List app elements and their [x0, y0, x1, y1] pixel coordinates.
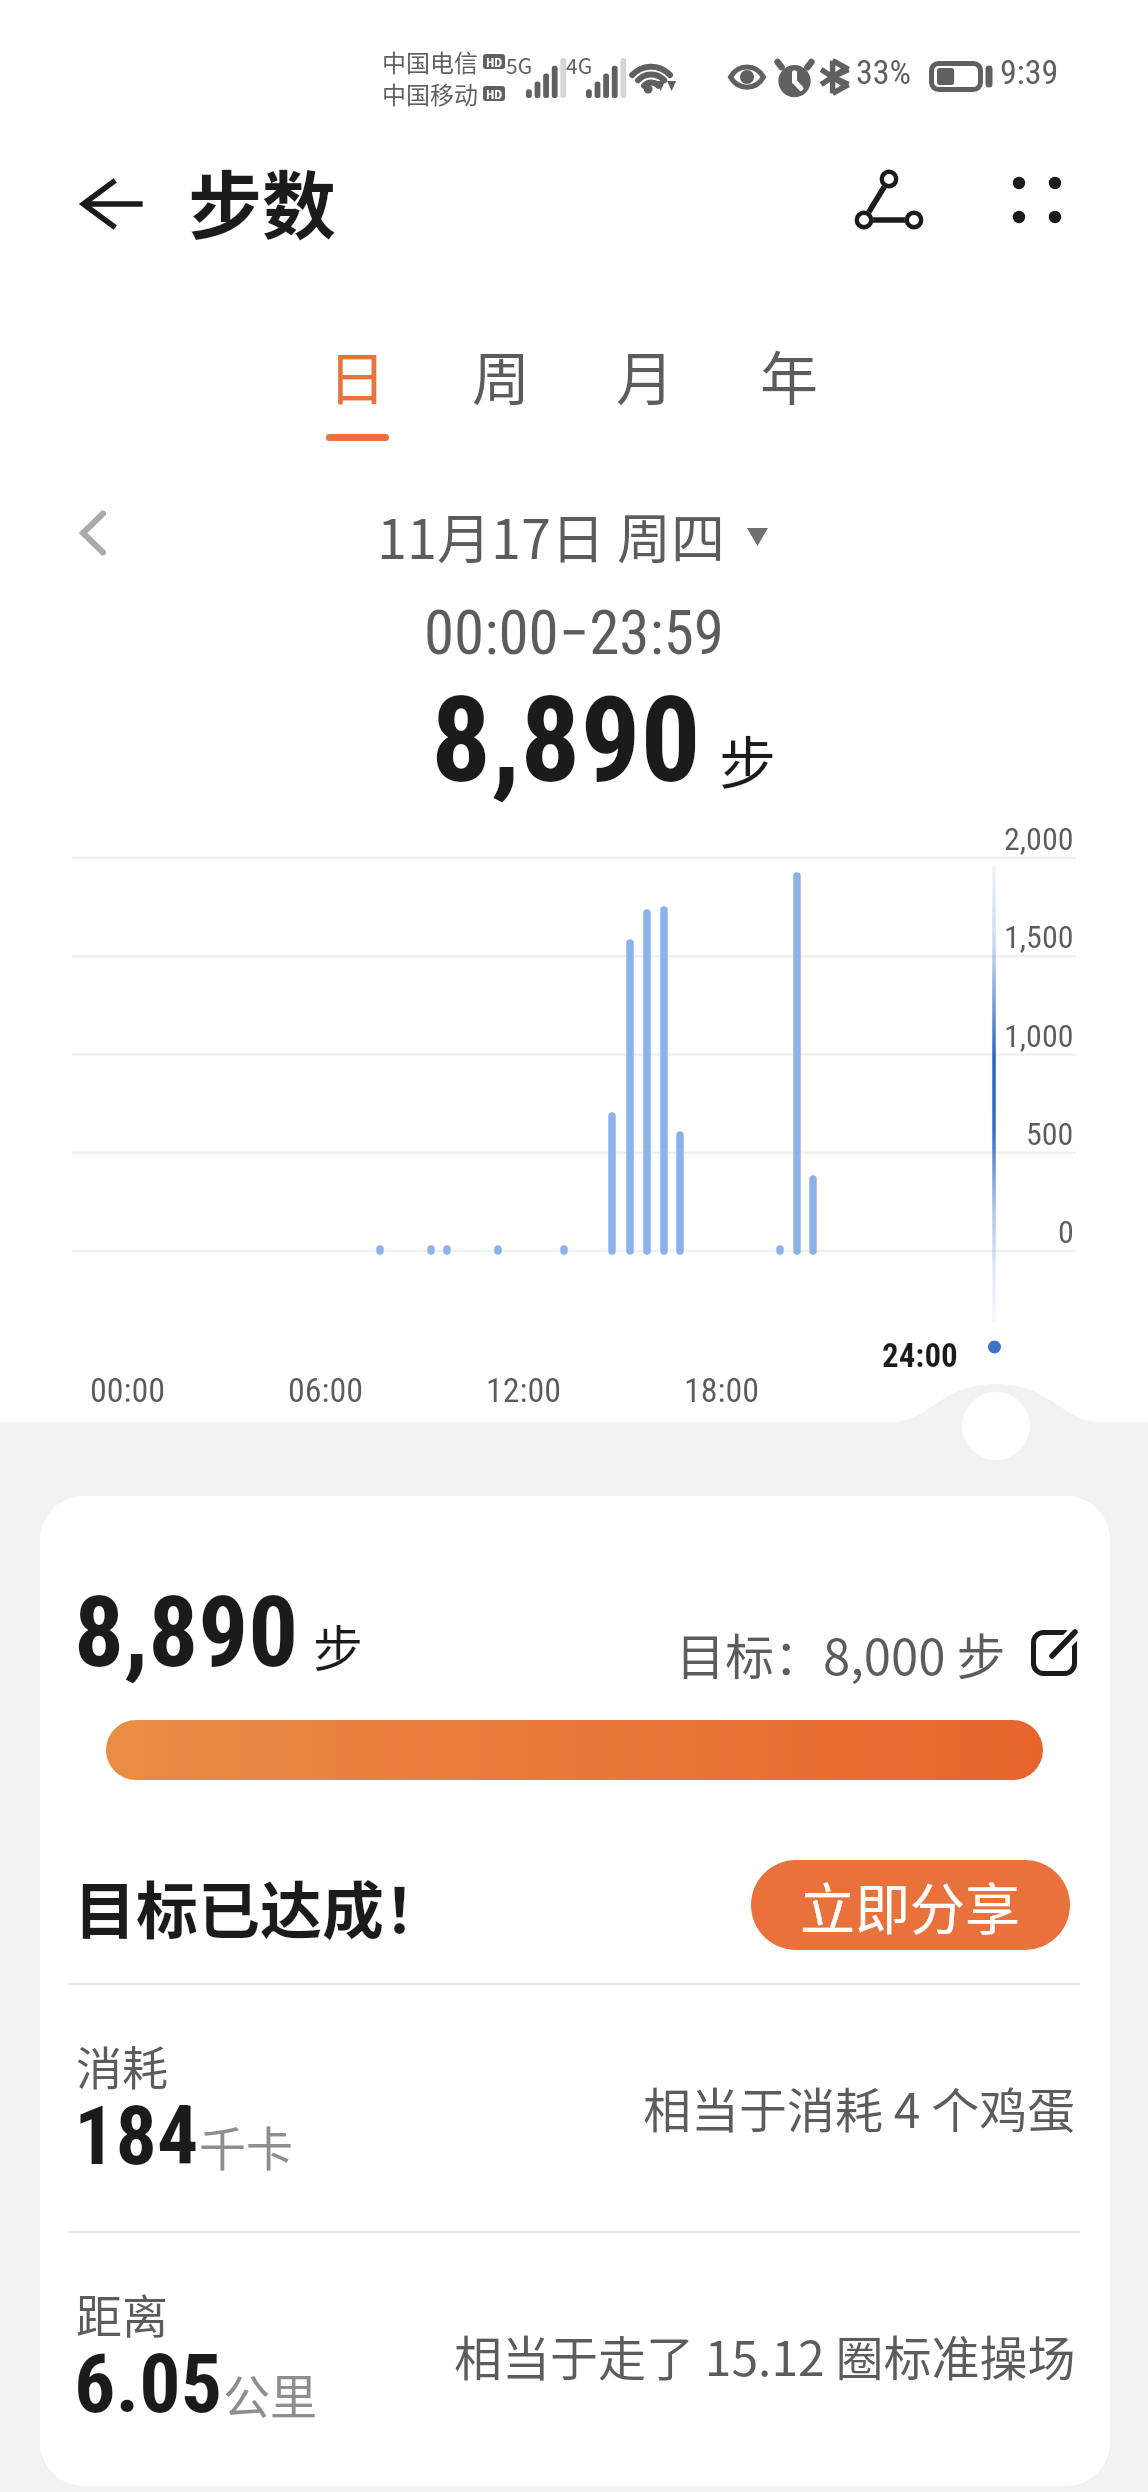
- staticText: 8,890: [74, 1574, 299, 1690]
- staticText: HD: [486, 54, 503, 69]
- staticText: 06:00: [288, 1370, 364, 1410]
- staticText: 目标：8,000 步: [676, 1618, 1006, 1689]
- button[interactable]: 消耗: [40, 2016, 1110, 2261]
- staticText: 8,890: [431, 671, 701, 810]
- staticText: 24:00: [882, 1336, 958, 1375]
- staticText: 目标已达成！: [74, 1862, 447, 1952]
- other: Edit step goal: [1029, 1625, 1081, 1677]
- button[interactable]: 周: [429, 333, 573, 448]
- button[interactable]: 月: [573, 333, 717, 448]
- staticText: 4G: [566, 50, 593, 80]
- staticText: 相当于消耗 4 个鸡蛋: [643, 2072, 1076, 2142]
- staticText: 184: [74, 2088, 199, 2184]
- staticText: 步: [313, 1609, 363, 1681]
- button[interactable]: More options: [1001, 160, 1089, 248]
- staticText: 中国电信: [382, 44, 478, 79]
- button[interactable]: 目标：8,000 步: [676, 1612, 1058, 1695]
- staticText: 12:00: [486, 1370, 562, 1410]
- staticText: 步数: [188, 147, 336, 254]
- button[interactable]: Previous day: [63, 498, 133, 568]
- staticText: 相当于走了 15.12 圈标准操场: [454, 2320, 1076, 2390]
- staticText: 00:00−23:59: [424, 597, 724, 668]
- staticText: 2,000: [1004, 820, 1074, 858]
- staticText: 距离: [76, 2280, 168, 2347]
- staticText: 500: [1026, 1115, 1074, 1153]
- staticText: 18:00: [684, 1370, 760, 1410]
- staticText: 6.05: [74, 2336, 223, 2432]
- staticText: 5G: [506, 50, 533, 80]
- button[interactable]: Share: [845, 160, 933, 248]
- staticText: 1,000: [1004, 1017, 1074, 1055]
- staticText: 9:39: [1000, 52, 1059, 92]
- staticText: 月: [616, 333, 675, 417]
- staticText: 1,500: [1004, 918, 1074, 956]
- button[interactable]: 日: [285, 333, 429, 448]
- button[interactable]: 11月17日 周四: [377, 496, 768, 574]
- staticText: 年: [760, 333, 819, 417]
- staticText: 00:00: [90, 1370, 166, 1410]
- staticText: 周: [472, 333, 531, 417]
- staticText: 0: [1058, 1213, 1074, 1251]
- staticText: 中国移动: [382, 76, 478, 111]
- staticText: 公里: [223, 2359, 317, 2427]
- staticText: 千卡: [199, 2111, 293, 2179]
- staticText: HD: [486, 86, 503, 101]
- button[interactable]: Back: [74, 165, 152, 243]
- staticText: 步: [719, 718, 776, 801]
- staticText: 日: [328, 333, 387, 417]
- staticText: 立即分享: [800, 1865, 1021, 1945]
- button[interactable]: 立即分享: [751, 1860, 1070, 1950]
- button[interactable]: 年: [717, 333, 861, 448]
- staticText: 11月17日 周四: [377, 496, 725, 574]
- button[interactable]: 距离: [40, 2264, 1110, 2486]
- staticText: 33%: [856, 52, 912, 92]
- staticText: 消耗: [76, 2032, 168, 2099]
